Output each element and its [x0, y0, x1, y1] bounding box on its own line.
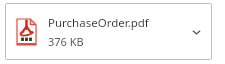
- staticText: 376 KB: [48, 34, 84, 49]
- button[interactable]: Show file options: [185, 21, 207, 43]
- button[interactable]: PurchaseOrder.pdf: [5, 3, 212, 60]
- staticText: PurchaseOrder.pdf: [48, 15, 149, 31]
